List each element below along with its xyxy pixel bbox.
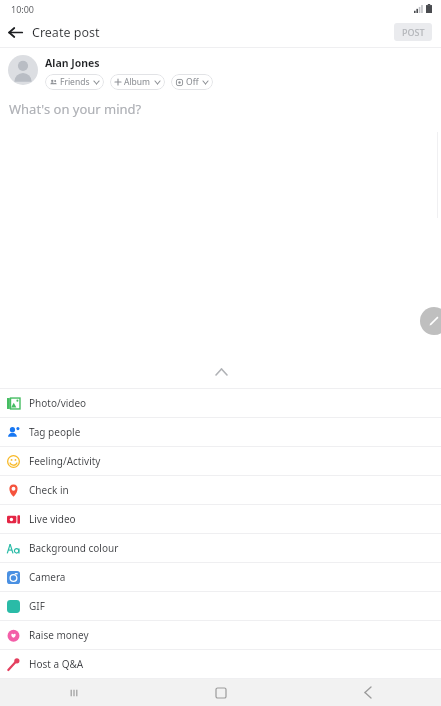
staticText: Live video (29, 512, 76, 526)
staticText: Friends (60, 76, 90, 88)
staticText: Off (186, 76, 199, 88)
button[interactable]: Home (147, 679, 294, 706)
staticText: Album (124, 76, 151, 88)
button[interactable]: Photo/video (0, 389, 441, 417)
staticText: Host a Q&A (29, 657, 84, 671)
button[interactable]: GIF (0, 592, 441, 620)
button[interactable]: Recent apps (0, 679, 147, 706)
button[interactable]: Live video (0, 505, 441, 533)
staticText: POST (402, 26, 425, 38)
button[interactable]: Album (110, 74, 165, 90)
staticText: Tag people (29, 425, 81, 439)
staticText: Create post (32, 24, 100, 41)
button[interactable]: Raise money (0, 621, 441, 649)
button[interactable]: Host a Q&A (0, 650, 441, 678)
button[interactable]: Background colour (0, 534, 441, 562)
button[interactable]: Camera (0, 563, 441, 591)
staticText: Camera (29, 570, 66, 584)
button[interactable]: Collapse (204, 364, 238, 380)
staticText: Background colour (29, 541, 119, 555)
staticText: Raise money (29, 628, 89, 642)
staticText: What's on your mind? (9, 100, 142, 118)
staticText: Check in (29, 483, 69, 497)
staticText: 10:00 (11, 3, 35, 15)
button[interactable]: Friends (45, 74, 104, 90)
button[interactable]: Check in (0, 476, 441, 504)
button[interactable]: Back (0, 17, 30, 47)
staticText: Alan Jones (45, 56, 100, 70)
button[interactable]: Off (171, 74, 213, 90)
staticText: GIF (29, 599, 45, 613)
button[interactable]: POST (394, 23, 432, 41)
button[interactable]: Profile photo (8, 55, 38, 85)
button[interactable]: Tag people (0, 418, 441, 446)
button[interactable]: Edit (420, 307, 441, 335)
staticText: Photo/video (29, 396, 87, 410)
staticText: Feeling/Activity (29, 454, 101, 468)
button[interactable]: Back (294, 679, 441, 706)
button[interactable]: Feeling/Activity (0, 447, 441, 475)
